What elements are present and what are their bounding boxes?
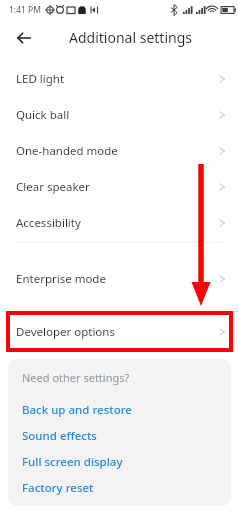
staticText: Full screen display <box>22 454 123 470</box>
button[interactable]: LED light <box>0 61 239 97</box>
button[interactable]: Full screen display <box>22 449 123 475</box>
button[interactable]: Clear speaker <box>0 169 239 205</box>
staticText: One-handed mode <box>16 143 118 159</box>
button[interactable]: Back up and restore <box>22 397 132 423</box>
staticText: Developer options <box>16 324 115 340</box>
staticText: Need other settings? <box>22 370 130 385</box>
staticText: 1:41 PM <box>9 4 41 16</box>
button[interactable]: Accessibility <box>0 205 239 241</box>
staticText: Quick ball <box>16 107 70 123</box>
button[interactable]: Back <box>11 25 37 51</box>
button[interactable]: Enterprise mode <box>0 261 239 297</box>
button[interactable]: Sound effects <box>22 423 97 449</box>
staticText: LED light <box>16 71 65 87</box>
staticText: Back up and restore <box>22 402 132 418</box>
button[interactable]: Quick ball <box>0 97 239 133</box>
staticText: Factory reset <box>22 480 94 496</box>
staticText: Additional settings <box>69 28 192 47</box>
button[interactable]: One-handed mode <box>0 133 239 169</box>
button[interactable]: Developer options <box>6 311 233 352</box>
staticText: Enterprise mode <box>16 271 106 287</box>
button[interactable]: Factory reset <box>22 475 94 501</box>
staticText: Clear speaker <box>16 179 90 195</box>
staticText: Accessibility <box>16 215 81 231</box>
staticText: Sound effects <box>22 428 97 444</box>
